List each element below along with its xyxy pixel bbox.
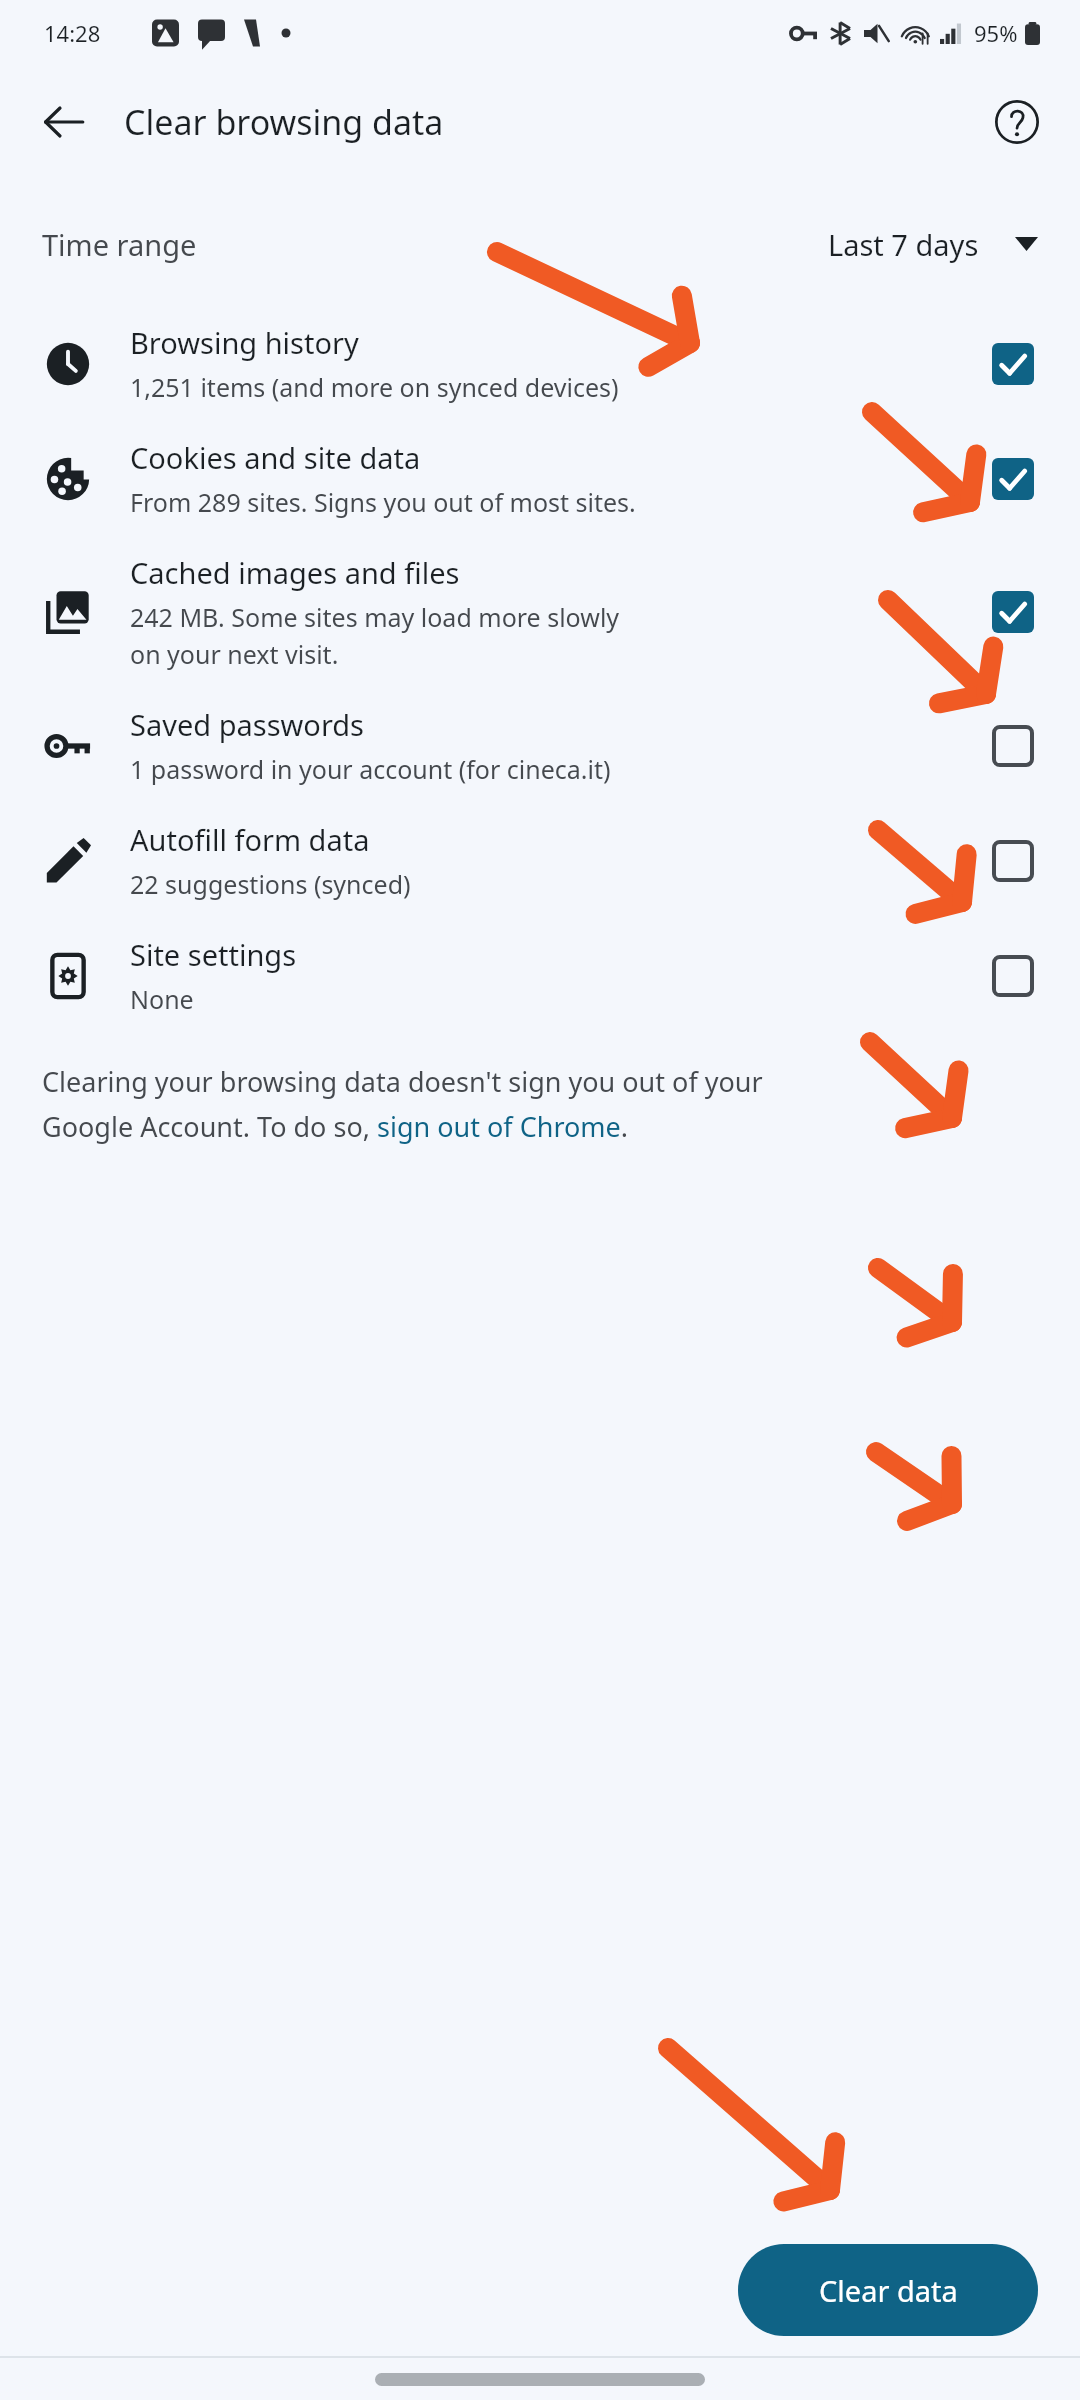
button[interactable]: Cookies and site data — [0, 421, 1080, 536]
button[interactable]: Saved passwords — [984, 717, 1042, 775]
button[interactable]: Browsing history — [984, 335, 1042, 393]
button[interactable]: Browsing history — [0, 306, 1080, 421]
button[interactable]: Clear data — [738, 2244, 1038, 2336]
staticText: Saved passwords — [130, 705, 365, 744]
staticText: 14:28 — [44, 18, 101, 48]
staticText: Autofill form data — [130, 820, 370, 859]
button[interactable]: Back — [26, 84, 102, 160]
staticText: None — [130, 982, 194, 1016]
staticText: Cached images and files — [130, 553, 460, 592]
button[interactable]: Time range — [0, 200, 1080, 288]
staticText: Clearing your browsing data doesn't sign… — [42, 1063, 763, 1145]
button[interactable]: Help — [980, 85, 1054, 159]
staticText: 1 password in your account (for cineca.i… — [130, 752, 611, 786]
staticText: 22 suggestions (synced) — [130, 867, 411, 901]
staticText: Cookies and site data — [130, 438, 421, 477]
staticText: Clear browsing data — [124, 99, 444, 145]
staticText: Time range — [42, 225, 197, 264]
staticText: Clear data — [819, 2271, 958, 2310]
button[interactable]: Saved passwords — [0, 688, 1080, 803]
button[interactable]: Cookies and site data — [984, 450, 1042, 508]
staticText: 95% — [974, 18, 1018, 48]
staticText: 242 MB. Some sites may load more slowly … — [130, 600, 620, 671]
staticText: Browsing history — [130, 323, 359, 362]
button[interactable]: Autofill form data — [0, 803, 1080, 918]
staticText: Last 7 days — [828, 225, 979, 264]
button[interactable]: Autofill form data — [984, 832, 1042, 890]
button[interactable]: Cached images and files — [984, 583, 1042, 641]
button[interactable]: Site settings — [984, 947, 1042, 1005]
button[interactable]: Cached images and files — [0, 536, 1080, 688]
staticText: From 289 sites. Signs you out of most si… — [130, 485, 636, 519]
button[interactable]: Site settings — [0, 918, 1080, 1033]
staticText: Site settings — [130, 935, 297, 974]
staticText: 1,251 items (and more on synced devices) — [130, 370, 619, 404]
